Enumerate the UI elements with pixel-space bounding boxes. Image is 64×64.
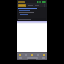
button[interactable] <box>17 21 47 23</box>
button[interactable]: More options <box>17 3 47 7</box>
button[interactable]: Key 3 <box>31 54 33 56</box>
button[interactable]: More options <box>43 4 46 7</box>
button[interactable]: Key 5 <box>43 54 45 56</box>
button[interactable] <box>17 7 47 21</box>
button[interactable] <box>18 4 26 7</box>
button[interactable]: Key 1 <box>19 54 21 56</box>
